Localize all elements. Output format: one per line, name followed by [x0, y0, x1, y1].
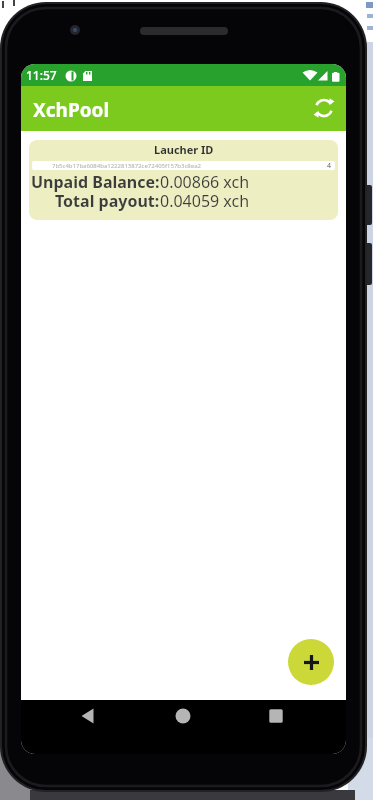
- staticText: 7b5c4b17ba6084ba1222813872ce72405f157b3c…: [52, 162, 201, 170]
- staticText: 0.04059 xch: [160, 190, 250, 212]
- button[interactable]: Laucher ID: [29, 140, 338, 220]
- staticText: XchPool: [33, 97, 110, 123]
- staticText: Unpaid Balance:: [31, 171, 160, 193]
- button[interactable]: [288, 639, 334, 685]
- staticText: 4: [327, 161, 332, 170]
- staticText: Laucher ID: [154, 142, 214, 157]
- staticText: 11:57: [26, 67, 57, 83]
- button[interactable]: [313, 97, 335, 119]
- button[interactable]: [264, 704, 288, 728]
- button[interactable]: [171, 704, 195, 728]
- staticText: 0.00866 xch: [160, 171, 250, 193]
- staticText: Total payout:: [55, 190, 160, 212]
- button[interactable]: [76, 704, 100, 728]
